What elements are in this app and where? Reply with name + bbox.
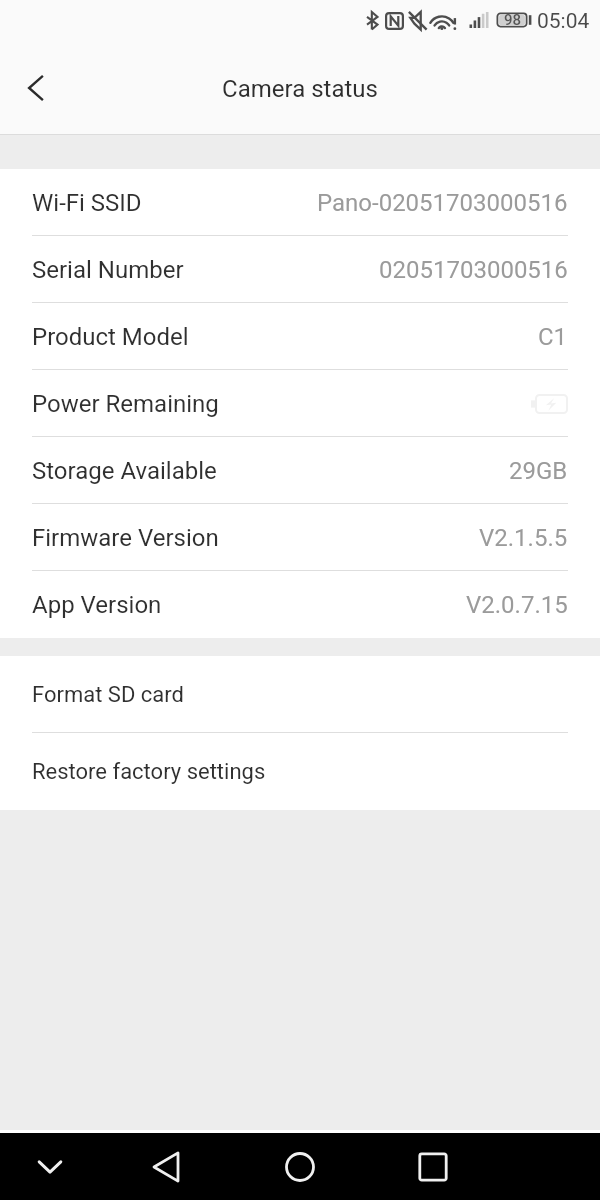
button[interactable]: Power Remaining [0, 370, 600, 437]
button[interactable]: Format SD card [0, 656, 600, 733]
staticText: 98 [504, 11, 522, 29]
staticText: 02051703000516 [379, 256, 568, 284]
staticText: Firmware Version [32, 524, 219, 552]
staticText: Product Model [32, 323, 189, 351]
button[interactable]: Serial Number [0, 236, 600, 303]
staticText: Camera status [0, 75, 600, 103]
button[interactable]: Back [99, 1133, 233, 1200]
button[interactable]: Home [233, 1133, 367, 1200]
button[interactable]: Recents [366, 1133, 500, 1200]
staticText: V2.0.7.15 [466, 591, 568, 619]
staticText: V2.1.5.5 [479, 524, 568, 552]
button[interactable]: Storage Available [0, 437, 600, 504]
button[interactable]: Restore factory settings [0, 733, 600, 810]
button[interactable]: Wi-Fi SSID [0, 169, 600, 236]
staticText: Pano-02051703000516 [317, 189, 568, 217]
staticText: Wi-Fi SSID [32, 189, 142, 217]
staticText: C1 [538, 323, 568, 351]
button[interactable]: Back [6, 58, 66, 118]
staticText: Power Remaining [32, 390, 219, 418]
staticText: App Version [32, 591, 162, 619]
staticText: Format SD card [32, 682, 184, 708]
button[interactable]: App Version [0, 571, 600, 638]
staticText: Storage Available [32, 457, 217, 485]
staticText: Serial Number [32, 256, 184, 284]
staticText: 29GB [509, 457, 568, 485]
staticText: Restore factory settings [32, 759, 266, 785]
staticText: 05:04 [537, 9, 590, 34]
button[interactable]: Hide keyboard [0, 1133, 108, 1200]
button[interactable]: Firmware Version [0, 504, 600, 571]
button[interactable]: Product Model [0, 303, 600, 370]
